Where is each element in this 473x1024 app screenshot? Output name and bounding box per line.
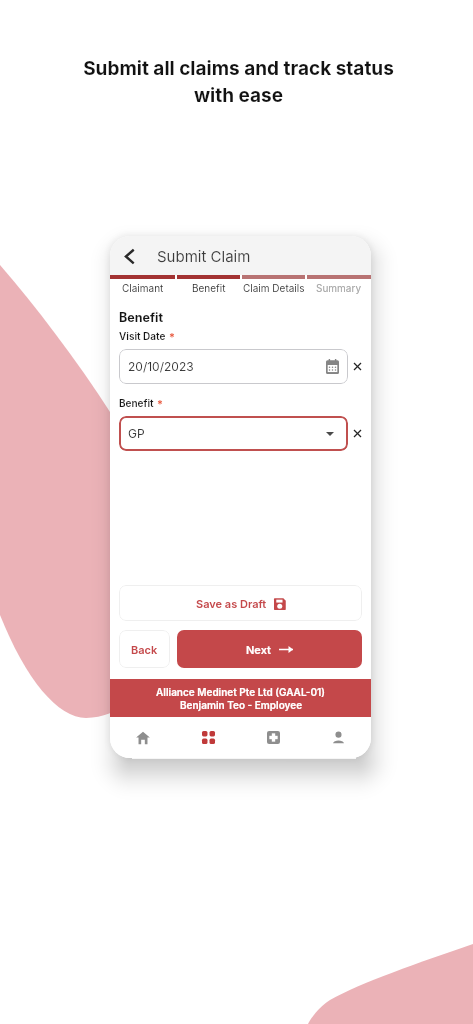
staticText: Submit all claims and track status with … (70, 57, 407, 106)
staticText: * (157, 397, 163, 410)
button[interactable]: Clear benefit (348, 416, 366, 451)
button[interactable]: Claimant (110, 279, 176, 296)
staticText: * (169, 330, 175, 343)
button[interactable]: New claim (241, 717, 306, 758)
button[interactable]: Back (119, 630, 170, 668)
staticText: GP (128, 426, 145, 441)
button[interactable]: Next (177, 630, 362, 668)
button[interactable]: Benefit (176, 279, 241, 296)
button[interactable]: Dashboard (176, 717, 241, 758)
staticText: Claim Details (243, 282, 305, 294)
staticText: Back (131, 643, 158, 656)
staticText: Save as Draft (196, 597, 267, 610)
staticText: 20/10/2023 (128, 359, 194, 374)
staticText: Alliance Medinet Pte Ltd (GAAL-01) (156, 686, 326, 698)
staticText: Claimant (122, 282, 164, 294)
button[interactable]: Summary (306, 279, 371, 296)
button[interactable]: 20/10/2023 (119, 349, 348, 384)
staticText: Benjamin Teo - Employee (180, 699, 303, 711)
staticText: Benefit (119, 397, 154, 409)
staticText: Next (246, 643, 271, 656)
staticText: Benefit (192, 282, 226, 294)
button[interactable]: Back (116, 243, 142, 269)
button[interactable]: Home (110, 717, 176, 758)
button[interactable]: GP (119, 416, 348, 451)
button[interactable]: Profile (306, 717, 371, 758)
staticText: Benefit (119, 310, 163, 325)
staticText: Visit Date (119, 330, 166, 342)
button[interactable]: Clear visit date (348, 349, 366, 384)
button[interactable]: Claim Details (241, 279, 306, 296)
staticText: Submit Claim (157, 247, 251, 265)
staticText: Summary (316, 282, 362, 294)
button[interactable]: Save as Draft (119, 585, 362, 621)
